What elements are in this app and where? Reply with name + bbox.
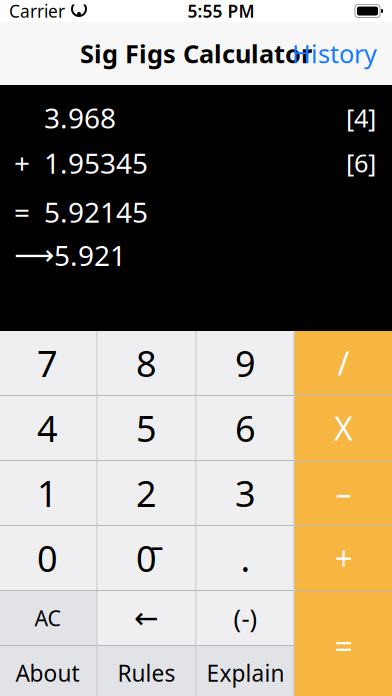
staticText: Sig Figs Calculator [80,37,312,70]
staticText: 3.968 [44,99,116,136]
staticText: (-) [233,601,257,635]
button[interactable]: 7 [0,331,96,395]
staticText: . [240,534,250,582]
button[interactable]: – [294,461,392,525]
staticText: About [15,658,79,688]
staticText: Rules [117,658,175,688]
button[interactable]: History [282,29,387,78]
button[interactable]: 3 [196,461,294,525]
staticText: 4 [37,404,58,452]
staticText: ← [134,601,159,635]
button[interactable]: (-) [196,591,294,645]
button[interactable]: 8 [97,331,195,395]
staticText: ⟶ [14,239,54,271]
button[interactable]: 9 [196,331,294,395]
staticText: AC [34,604,60,632]
button[interactable]: 5 [97,396,195,460]
staticText: 8 [136,339,157,387]
button[interactable]: ← [97,591,195,645]
staticText: 1.95345 [44,144,148,181]
staticText: [4] [346,101,376,134]
button[interactable]: 2 [97,461,195,525]
staticText: [6] [346,146,376,180]
staticText: = [334,624,352,667]
staticText: Explain [206,658,284,688]
staticText: 6 [235,404,256,452]
staticText: Carrier [9,0,65,22]
staticText: History [292,37,377,70]
button[interactable]: 4 [0,396,96,460]
staticText: 5:55 PM [187,0,254,22]
button[interactable]: AC [0,591,96,645]
staticText: 3 [235,469,256,517]
button[interactable]: 0̄ [97,526,195,590]
button[interactable]: . [196,526,294,590]
staticText: 2 [136,469,157,517]
button[interactable]: Rules [97,646,195,696]
staticText: 5.921 [54,236,126,274]
staticText: 9 [235,339,256,387]
staticText: 7 [37,339,58,387]
staticText: = [14,193,30,231]
staticText: 0̄ [136,534,157,582]
staticText: 0 [37,534,58,582]
staticText: + [14,144,30,181]
staticText: X [334,407,353,449]
staticText: 5.92145 [44,193,148,231]
button[interactable]: 6 [196,396,294,460]
button[interactable]: + [294,526,392,590]
staticText: 5 [136,404,157,452]
staticText: 1 [37,469,58,517]
button[interactable]: About [0,646,96,696]
button[interactable]: Explain [196,646,294,696]
button[interactable]: X [294,396,392,460]
button[interactable]: 1 [0,461,96,525]
staticText: / [337,342,349,384]
button[interactable]: = [294,591,392,696]
button[interactable]: / [294,331,392,395]
staticText: – [335,472,351,514]
staticText: + [334,537,352,579]
button[interactable]: 0 [0,526,96,590]
